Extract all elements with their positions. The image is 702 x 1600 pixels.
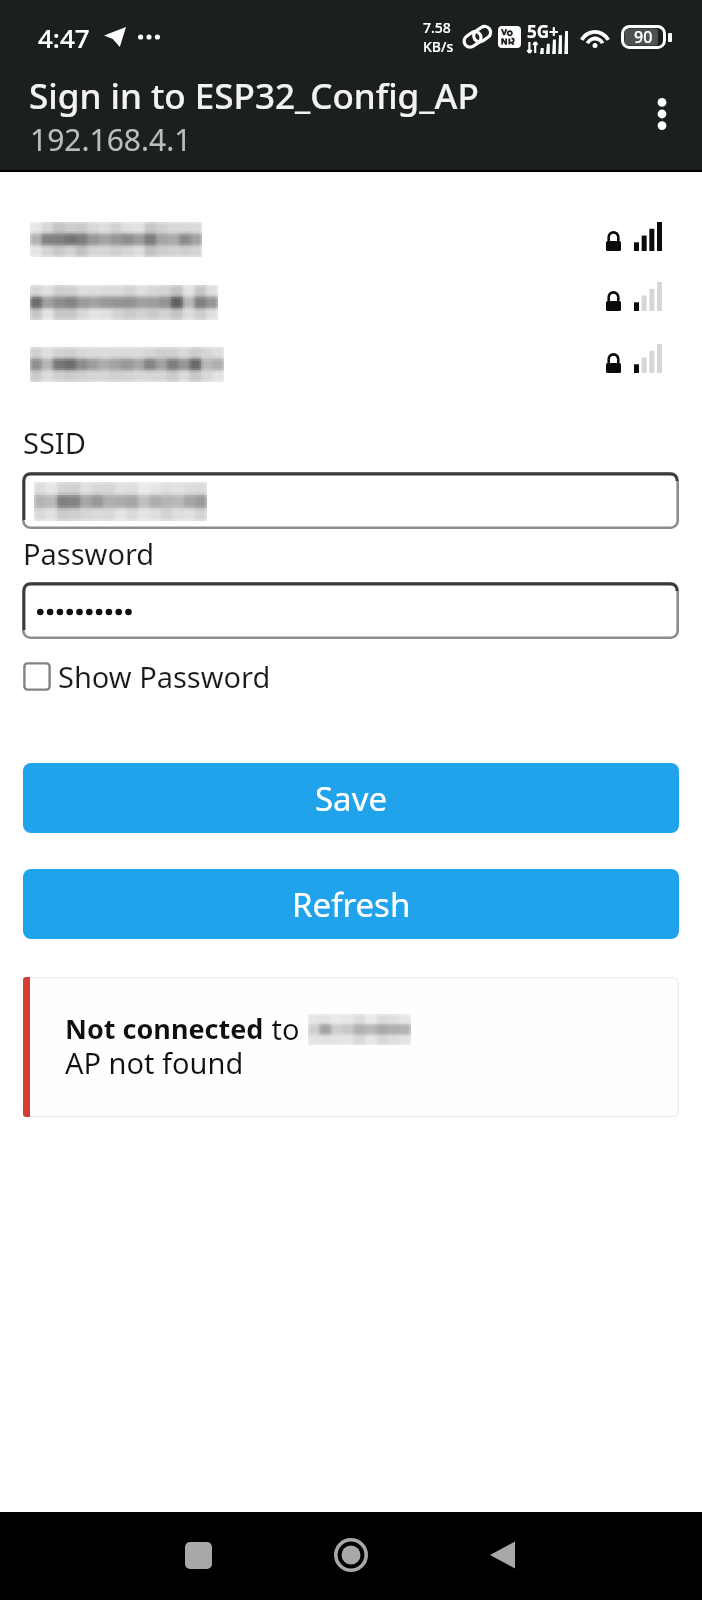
staticText: SSID — [23, 423, 86, 462]
staticText: to — [264, 1009, 308, 1048]
button[interactable] — [22, 582, 679, 639]
button[interactable]: Secured network — [0, 327, 702, 389]
button[interactable]: Show Password — [23, 655, 279, 698]
staticText: Password — [23, 534, 155, 573]
staticText: 5G+ — [527, 20, 559, 43]
button[interactable]: Recent apps — [154, 1512, 242, 1600]
button[interactable]: Refresh — [23, 869, 679, 939]
button[interactable] — [22, 472, 679, 529]
staticText: Not connected — [65, 1010, 264, 1047]
button[interactable]: Home — [307, 1512, 395, 1600]
staticText: 7.58 — [423, 18, 451, 37]
other: Secured network — [606, 292, 621, 311]
button[interactable]: Back — [458, 1512, 546, 1600]
staticText: Sign in to ESP32_Config_AP — [29, 72, 479, 120]
staticText: AP not found — [65, 1043, 244, 1082]
staticText: KB/s — [423, 37, 454, 56]
other: Secured network — [606, 232, 621, 251]
staticText: 4:47 — [38, 20, 90, 55]
button[interactable]: Secured network — [0, 265, 702, 327]
staticText: Show Password — [58, 657, 271, 696]
other: Secured network — [606, 354, 621, 373]
button[interactable]: More options — [630, 82, 694, 146]
staticText: Refresh — [292, 882, 411, 927]
staticText: 90 — [634, 26, 653, 48]
staticText: Save — [315, 776, 388, 821]
button[interactable]: Save — [23, 763, 679, 833]
staticText: 192.168.4.1 — [30, 119, 192, 160]
button[interactable]: Secured network — [0, 202, 702, 264]
